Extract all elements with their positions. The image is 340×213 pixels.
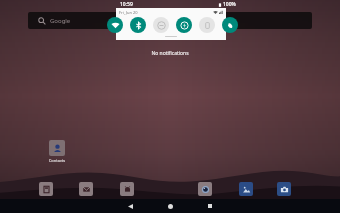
staticText: 100%	[223, 1, 236, 8]
button[interactable]: Back	[119, 199, 141, 213]
button[interactable]: Google	[28, 12, 312, 29]
button[interactable]: Cast	[222, 17, 238, 33]
staticText: Contacts	[44, 158, 70, 163]
button[interactable]: Flashlight	[176, 17, 192, 33]
button[interactable]: Camera lens	[198, 182, 212, 196]
button[interactable]: Wi-Fi	[107, 17, 123, 33]
staticText: Fri, Jun 20	[119, 10, 138, 15]
staticText: 10:59	[120, 1, 133, 8]
button[interactable]: Bluetooth	[130, 17, 146, 33]
button[interactable]: Auto rotate	[199, 17, 215, 33]
staticText: No notifications	[0, 50, 340, 57]
staticText: Google	[50, 17, 71, 25]
button[interactable]: Recents	[199, 199, 221, 213]
button[interactable]: Clock	[39, 182, 53, 196]
button[interactable]: Contacts	[44, 140, 70, 163]
button[interactable]: Photos	[239, 182, 253, 196]
button[interactable]: Do not disturb	[153, 17, 169, 33]
button[interactable]: Messages	[79, 182, 93, 196]
button[interactable]: Android	[120, 182, 134, 196]
button[interactable]: Home	[159, 199, 181, 213]
button[interactable]: Camera	[277, 182, 291, 196]
